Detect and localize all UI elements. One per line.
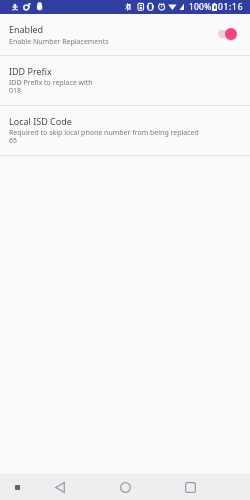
- button[interactable]: Local ISD Code: [0, 106, 250, 155]
- staticText: 018: [9, 86, 22, 96]
- button[interactable]: Recent apps: [180, 477, 200, 497]
- staticText: 100%: [189, 1, 212, 13]
- button[interactable]: Home: [115, 477, 135, 497]
- staticText: Local ISD Code: [9, 115, 72, 127]
- button[interactable]: Switch keyboard: [7, 477, 27, 497]
- staticText: IDD Prefix: [9, 65, 52, 77]
- staticText: Enabled: [9, 23, 44, 35]
- button[interactable]: Back: [50, 477, 70, 497]
- staticText: Required to skip local phone number from…: [9, 128, 199, 138]
- staticText: 65: [9, 136, 18, 146]
- staticText: IDD Prefix to replace with: [9, 78, 93, 88]
- button[interactable]: IDD Prefix: [0, 56, 250, 105]
- staticText: 01:16: [218, 1, 244, 13]
- button[interactable]: Enabled: [0, 14, 250, 55]
- staticText: Enable Number Replacements: [9, 37, 109, 47]
